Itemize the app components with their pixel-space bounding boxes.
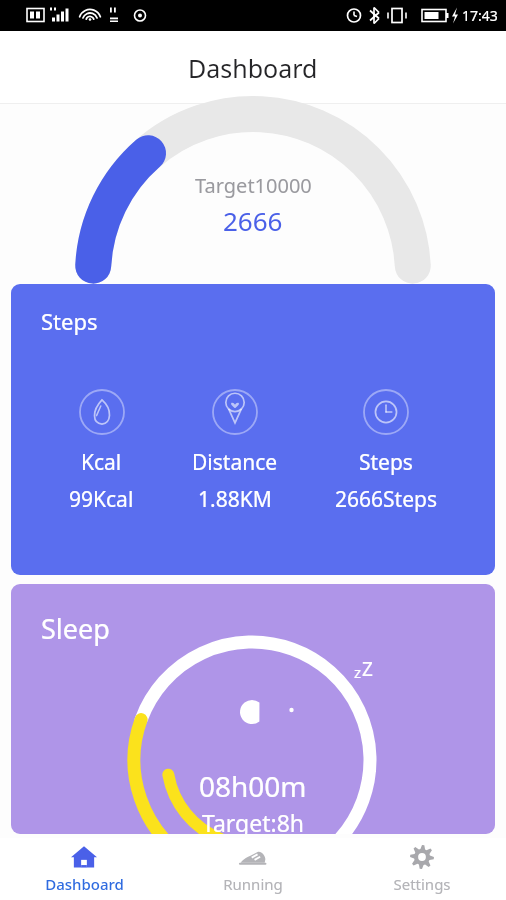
staticText: 2666 bbox=[223, 203, 283, 238]
staticText: Target10000 bbox=[195, 172, 312, 199]
staticText: 17:43 bbox=[462, 6, 498, 25]
staticText: Running bbox=[223, 874, 283, 894]
staticText: 2666Steps bbox=[335, 485, 437, 514]
staticText: z bbox=[354, 662, 362, 682]
staticText: Dashboard bbox=[45, 874, 124, 894]
staticText: Settings bbox=[393, 874, 451, 894]
staticText: Dashboard bbox=[188, 51, 318, 85]
staticText: Kcal bbox=[81, 448, 122, 477]
staticText: 1.88KM bbox=[198, 485, 272, 514]
staticText: 08h00m bbox=[199, 767, 307, 805]
staticText: Target:8h bbox=[202, 807, 305, 834]
button[interactable]: Running bbox=[168, 838, 337, 900]
staticText: Z bbox=[362, 656, 373, 682]
button[interactable]: Steps bbox=[11, 284, 495, 575]
button[interactable]: Settings bbox=[337, 838, 506, 900]
staticText: Sleep bbox=[41, 610, 110, 647]
button[interactable]: Dashboard bbox=[0, 838, 168, 900]
button[interactable]: Sleep bbox=[11, 584, 495, 834]
staticText: Distance bbox=[192, 448, 278, 477]
staticText: 99Kcal bbox=[69, 485, 134, 514]
staticText: Steps bbox=[41, 306, 98, 336]
staticText: Steps bbox=[359, 448, 413, 477]
